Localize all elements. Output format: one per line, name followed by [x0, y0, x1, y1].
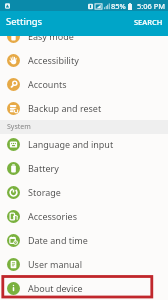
staticText: Settings — [6, 15, 43, 28]
staticText: Accounts — [28, 78, 67, 90]
staticText: Easy mode — [28, 30, 74, 42]
button[interactable]: Accessibility — [0, 48, 168, 72]
button[interactable]: Backup and reset — [0, 96, 168, 120]
staticText: SEARCH — [134, 17, 163, 27]
button[interactable]: Storage — [0, 180, 168, 204]
button[interactable]: User manual — [0, 252, 168, 276]
button[interactable]: Accounts — [0, 72, 168, 96]
button[interactable]: SEARCH — [127, 14, 168, 34]
staticText: 85% — [111, 1, 126, 11]
button[interactable]: Language and input — [0, 132, 168, 156]
staticText: Storage — [28, 186, 61, 198]
staticText: Language and input — [28, 138, 114, 150]
staticText: About device — [28, 282, 83, 294]
staticText: Battery — [28, 162, 59, 174]
staticText: Date and time — [28, 234, 88, 246]
staticText: Backup and reset — [28, 102, 102, 114]
button[interactable]: About device — [0, 276, 168, 300]
staticText: User manual — [28, 258, 82, 270]
button[interactable]: Accessories — [0, 204, 168, 228]
staticText: Accessories — [28, 210, 77, 222]
staticText: System — [7, 122, 31, 132]
button[interactable]: Battery — [0, 156, 168, 180]
button[interactable]: Date and time — [0, 228, 168, 252]
staticText: Accessibility — [28, 54, 79, 66]
staticText: 5:06 PM — [137, 1, 166, 11]
button[interactable]: Easy mode — [0, 24, 168, 48]
